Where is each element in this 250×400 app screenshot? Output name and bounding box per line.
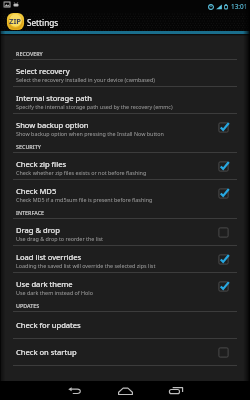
button[interactable]: Check MD5 [0, 180, 250, 206]
staticText: UPDATES [16, 302, 40, 309]
staticText: SECURITY [16, 143, 41, 150]
staticText: Internal storage path [16, 93, 92, 103]
button[interactable]: Use dark theme [0, 273, 250, 299]
staticText: Settings [27, 17, 59, 28]
button[interactable]: Back [54, 381, 94, 400]
staticText: Drag & drop [16, 225, 60, 235]
staticText: Use drag & drop to reorder the list [16, 235, 104, 242]
staticText: 13:01 [231, 2, 248, 11]
staticText: Use dark them instead of Holo [16, 289, 94, 296]
staticText: Check on startup [16, 347, 77, 357]
staticText: Check MD5 [16, 186, 57, 196]
staticText: ZIP [9, 16, 22, 26]
staticText: Load list overrides [16, 252, 82, 262]
button[interactable]: Home [105, 381, 145, 400]
staticText: Loading the saved list will override the… [16, 262, 156, 269]
staticText: Check zip files [16, 159, 67, 169]
staticText: Check for updates [16, 320, 81, 330]
button[interactable]: Select recovery [0, 60, 250, 86]
button[interactable]: Internal storage path [0, 87, 250, 113]
button[interactable]: Recents [156, 381, 196, 400]
button[interactable]: Show backup option [0, 114, 250, 140]
staticText: Select the recovery installed in your de… [16, 76, 155, 83]
button[interactable]: Drag & drop [0, 219, 250, 245]
button[interactable]: Check on startup [0, 339, 250, 365]
staticText: Show backup option [16, 120, 89, 130]
staticText: Use dark theme [16, 279, 73, 289]
staticText: INTERFACE [16, 209, 45, 216]
staticText: Select recovery [16, 66, 70, 76]
button[interactable]: Load list overrides [0, 246, 250, 272]
staticText: Specify the internal storage path used b… [16, 103, 173, 110]
button[interactable]: Check zip files [0, 153, 250, 179]
staticText: Check whether zip files exists or not be… [16, 169, 147, 176]
staticText: Show backup option when pressing the Ins… [16, 130, 164, 137]
staticText: Check MD5 if a md5sum file is present be… [16, 196, 153, 203]
button[interactable]: Check for updates [0, 312, 250, 338]
staticText: RECOVERY [16, 50, 43, 57]
